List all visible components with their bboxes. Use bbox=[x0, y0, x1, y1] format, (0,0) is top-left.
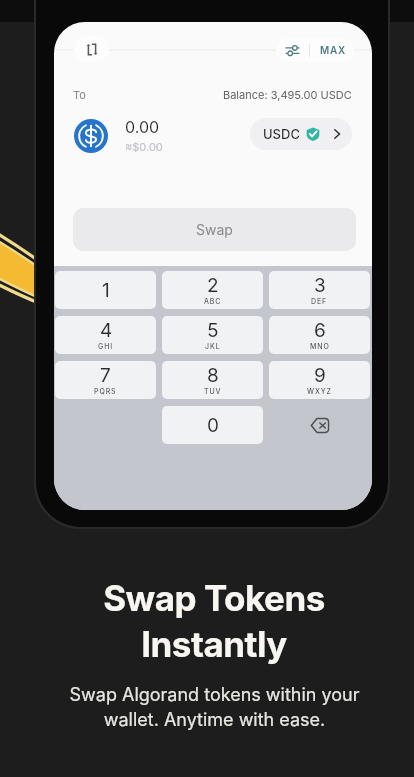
staticText: 0.00 bbox=[125, 117, 160, 136]
staticText: MNO bbox=[310, 342, 330, 350]
staticText: Balance: 3,495.00 USDC bbox=[223, 88, 352, 101]
staticText: 6 bbox=[314, 319, 326, 342]
button[interactable]: Backspace bbox=[269, 406, 370, 444]
staticText: Swap bbox=[196, 221, 233, 238]
staticText: GHI bbox=[98, 342, 114, 350]
button[interactable]: 7 bbox=[55, 361, 156, 399]
staticText: 2 bbox=[207, 274, 219, 297]
staticText: 4 bbox=[100, 319, 113, 342]
staticText: Swap Algorand tokens within your wallet.… bbox=[69, 684, 360, 730]
staticText: 0 bbox=[207, 414, 219, 437]
staticText: 5 bbox=[207, 319, 219, 342]
staticText: To bbox=[73, 88, 86, 101]
staticText: ≈$0.00 bbox=[125, 140, 163, 153]
button[interactable]: MAX bbox=[276, 38, 354, 62]
staticText: 8 bbox=[207, 364, 219, 387]
button[interactable]: 1 bbox=[55, 271, 156, 309]
button[interactable]: 4 bbox=[55, 316, 156, 354]
button[interactable]: 8 bbox=[162, 361, 263, 399]
staticText: JKL bbox=[205, 342, 221, 350]
staticText: ABC bbox=[204, 297, 222, 305]
button[interactable]: 9 bbox=[269, 361, 370, 399]
staticText: DEF bbox=[311, 297, 328, 305]
button[interactable]: 0 bbox=[162, 406, 263, 444]
staticText: Swap Tokens Instantly bbox=[103, 577, 325, 665]
button[interactable]: Swap bbox=[73, 208, 356, 251]
staticText: 3 bbox=[314, 274, 326, 297]
staticText: USDC bbox=[263, 126, 300, 142]
button[interactable]: 2 bbox=[162, 271, 263, 309]
staticText: 9 bbox=[314, 364, 326, 387]
staticText: 7 bbox=[100, 364, 111, 387]
button[interactable]: USDC bbox=[250, 118, 352, 150]
button[interactable]: Swap direction bbox=[74, 36, 109, 62]
staticText: PQRS bbox=[94, 387, 117, 395]
button[interactable]: 5 bbox=[162, 316, 263, 354]
staticText: WXYZ bbox=[307, 387, 332, 395]
staticText: 1 bbox=[102, 279, 110, 302]
staticText: TUV bbox=[204, 387, 222, 395]
button[interactable]: 3 bbox=[269, 271, 370, 309]
button[interactable]: 6 bbox=[269, 316, 370, 354]
staticText: MAX bbox=[320, 44, 346, 56]
